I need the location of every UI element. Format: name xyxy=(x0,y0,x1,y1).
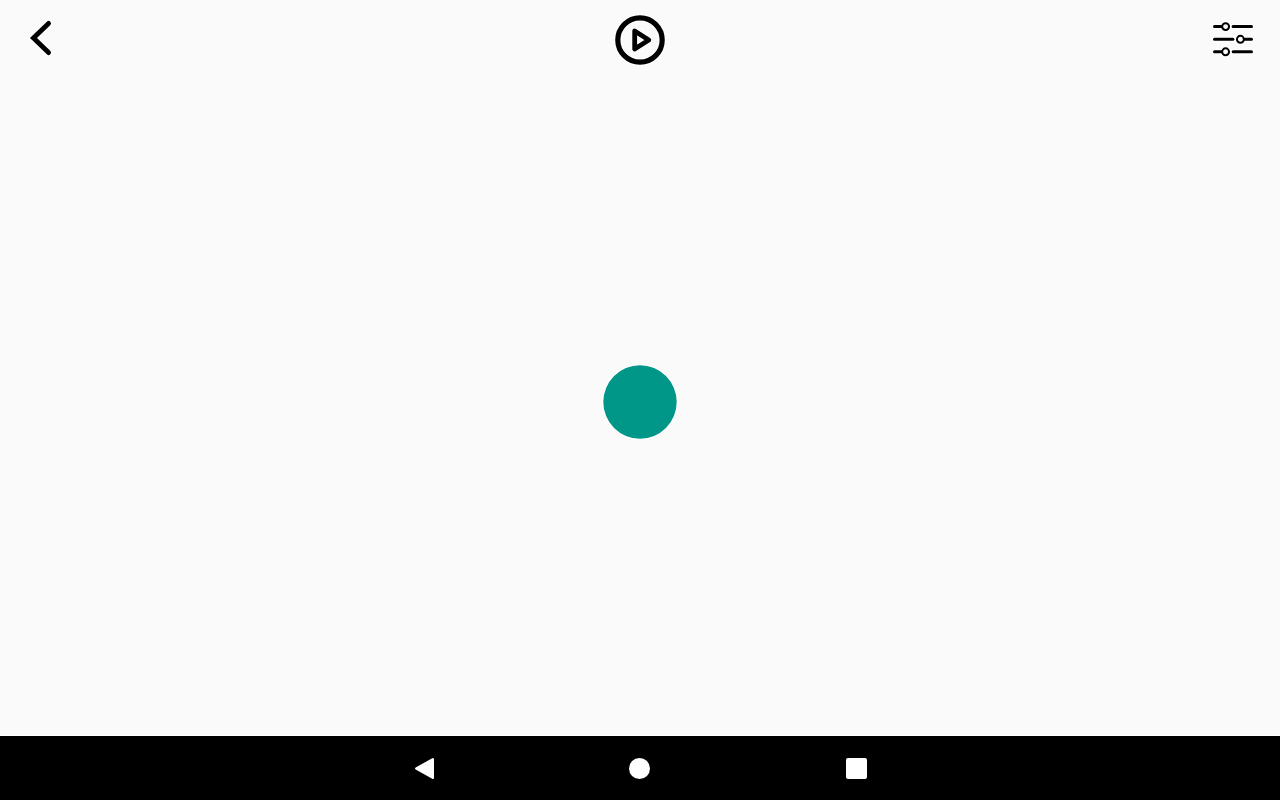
button[interactable]: Record xyxy=(601,363,679,441)
button[interactable]: Recent apps xyxy=(824,736,888,800)
button[interactable]: Settings xyxy=(1210,18,1256,60)
button[interactable]: Back xyxy=(392,736,456,800)
button[interactable]: Back xyxy=(13,10,69,66)
button[interactable]: Play xyxy=(608,8,672,72)
button[interactable]: Home xyxy=(607,736,671,800)
